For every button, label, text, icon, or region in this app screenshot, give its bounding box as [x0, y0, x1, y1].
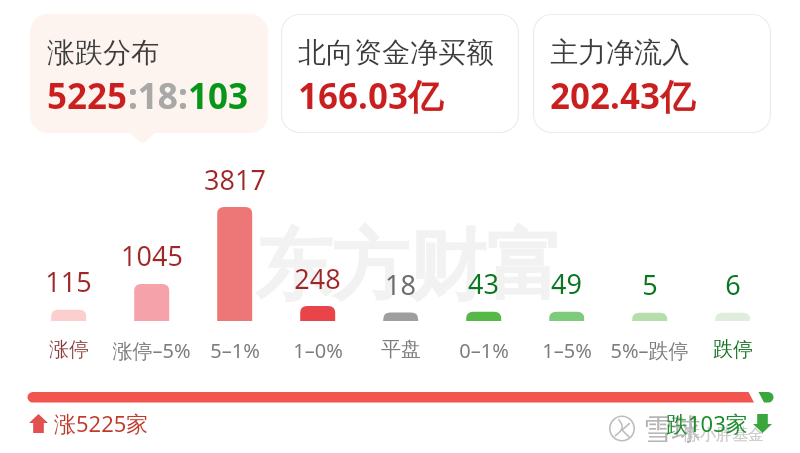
button[interactable]: 43 [442, 150, 525, 362]
button[interactable]: 49 [525, 150, 608, 362]
button[interactable]: 115 [27, 150, 110, 362]
staticText: 5 [642, 266, 658, 303]
staticText: 5225 [47, 72, 128, 120]
staticText: 涨停 [49, 337, 89, 362]
staticText: 115 [45, 263, 92, 300]
staticText: 跌停 [713, 337, 753, 362]
button[interactable]: 1045 [110, 150, 193, 362]
staticText: 18 [385, 266, 416, 303]
staticText: 103 [188, 72, 249, 120]
staticText: :18: [128, 72, 188, 120]
staticText: 0–1% [459, 337, 509, 364]
staticText: 陈小胖基金 [684, 425, 764, 445]
button[interactable]: 5 [608, 150, 691, 362]
staticText: 202.43亿 [550, 72, 695, 120]
staticText: 涨5225家 [54, 408, 149, 438]
button[interactable]: 涨5225家 [29, 408, 149, 438]
staticText: 5%–跌停 [610, 337, 689, 364]
staticText: 涨停–5% [112, 337, 191, 364]
button[interactable]: 涨跌分布 [30, 14, 268, 133]
staticText: 雪球 [643, 411, 701, 448]
staticText: 6 [725, 266, 741, 303]
staticText: 主力净流入 [550, 35, 690, 70]
button[interactable]: 3817 [193, 150, 276, 362]
button[interactable]: 18 [359, 150, 442, 362]
staticText: 248 [294, 260, 341, 297]
staticText: 1–5% [542, 337, 592, 364]
staticText: 1045 [121, 237, 183, 274]
button[interactable]: 248 [276, 150, 359, 362]
staticText: 跌103家 [666, 408, 748, 438]
staticText: 平盘 [381, 337, 421, 362]
button[interactable]: 北向资金净买额 [281, 14, 519, 133]
staticText: 涨跌分布 [47, 35, 159, 70]
button[interactable]: 6 [691, 150, 774, 362]
button[interactable]: 跌103家 [666, 408, 772, 438]
staticText: 49 [551, 265, 582, 302]
staticText: 5–1% [210, 337, 260, 364]
staticText: 3817 [204, 161, 266, 198]
staticText: 43 [468, 265, 499, 302]
staticText: 东方财富 [255, 218, 563, 315]
button[interactable]: 主力净流入 [533, 14, 771, 133]
staticText: 北向资金净买额 [298, 35, 494, 70]
staticText: 166.03亿 [298, 72, 443, 120]
staticText: 1–0% [293, 337, 343, 364]
